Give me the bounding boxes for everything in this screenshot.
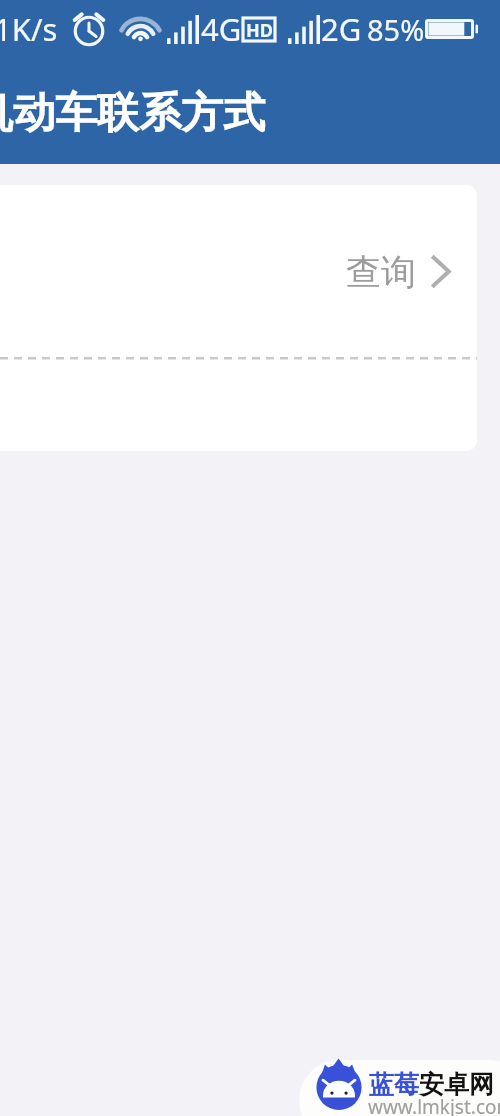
staticText: www.lmkjst.com bbox=[368, 1094, 500, 1116]
staticText: 85% bbox=[367, 10, 425, 49]
other: 闹钟 bbox=[73, 13, 105, 45]
staticText: 1K/s bbox=[0, 8, 58, 50]
staticText: 4G bbox=[201, 8, 242, 50]
staticText: HD bbox=[246, 18, 273, 41]
other: WiFi bbox=[125, 16, 156, 40]
button[interactable]: 查询 bbox=[0, 185, 477, 358]
staticText: 查询 bbox=[346, 250, 416, 294]
other: 查询 bbox=[430, 254, 451, 289]
staticText: 蓝莓 bbox=[369, 1069, 419, 1100]
staticText: 机动车联系方式 bbox=[0, 87, 265, 140]
staticText: 2G bbox=[321, 8, 362, 50]
staticText: 安卓网 bbox=[419, 1069, 494, 1100]
